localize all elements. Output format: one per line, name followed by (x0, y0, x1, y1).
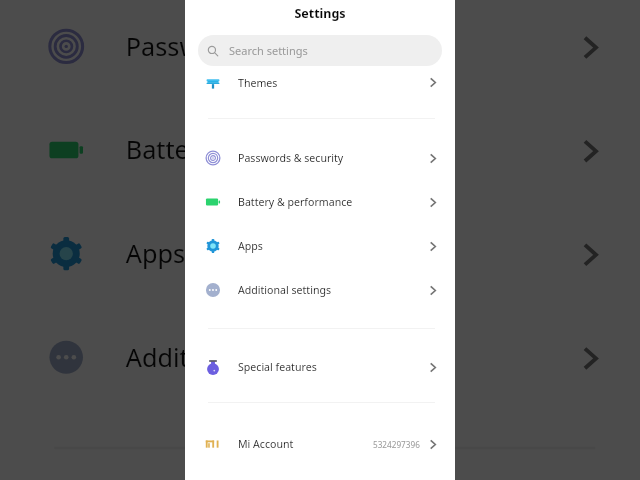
staticText: Special features (238, 360, 317, 374)
staticText: Passwords & security (238, 151, 344, 165)
button[interactable]: Search settings (198, 35, 442, 66)
staticText: Search settings (229, 43, 308, 58)
staticText: Battery & performance (126, 133, 400, 166)
button[interactable]: Special features (185, 345, 455, 389)
staticText: Apps (238, 239, 263, 253)
button[interactable]: Passwords & security (185, 136, 455, 180)
staticText: Battery & performance (238, 195, 353, 209)
staticText: Passwords & security (126, 30, 378, 63)
button[interactable]: Themes (185, 66, 455, 99)
staticText: Additional settings (126, 341, 350, 374)
button[interactable]: Apps (185, 224, 455, 268)
button[interactable]: Mi Account (185, 422, 455, 466)
staticText: Themes (238, 76, 278, 90)
staticText: 5324297396 (373, 439, 420, 450)
staticText: Mi Account (238, 437, 294, 451)
staticText: Additional settings (238, 283, 332, 297)
staticText: Settings (294, 5, 346, 22)
button[interactable]: Additional settings (185, 268, 455, 312)
staticText: Apps (126, 237, 185, 270)
button[interactable]: Battery & performance (185, 180, 455, 224)
